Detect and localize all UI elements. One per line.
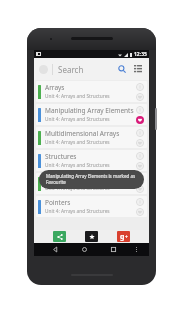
staticText: Multidimensional Arrays <box>45 129 120 138</box>
button[interactable]: Recent apps <box>109 245 118 254</box>
button[interactable]: View options <box>132 63 144 75</box>
staticText: Pointers <box>45 198 71 207</box>
staticText: + <box>125 234 128 241</box>
button[interactable]: Account <box>39 65 48 74</box>
button[interactable]: Download <box>136 83 144 91</box>
button[interactable]: Favourite <box>136 162 144 170</box>
button[interactable]: Google Plus <box>117 231 130 242</box>
button[interactable]: More options <box>132 245 141 254</box>
staticText: g <box>120 232 125 242</box>
button[interactable]: Favourites <box>85 231 98 242</box>
button[interactable]: Share <box>53 231 66 242</box>
button[interactable]: Download <box>136 198 144 206</box>
staticText: Search <box>58 64 116 75</box>
button[interactable]: Back <box>51 245 60 254</box>
staticText: Manipulating Array Elements <box>45 106 134 115</box>
button[interactable]: Download <box>136 106 144 114</box>
staticText: Structures <box>45 152 77 161</box>
button[interactable]: Download <box>136 152 144 160</box>
staticText: Manipulating Array Elements is marked as… <box>46 173 137 185</box>
staticText: Declaring a Structure <box>45 175 110 184</box>
button[interactable]: Favourite <box>136 139 144 147</box>
button[interactable]: Download <box>136 129 144 137</box>
button[interactable]: Pointers <box>36 196 147 217</box>
staticText: Unit 4: Arrays and Structures <box>45 116 110 123</box>
button[interactable]: Favourite <box>136 93 144 101</box>
staticText: 12:35 <box>134 51 147 58</box>
staticText: Unit 4: Arrays and Structures <box>45 185 110 192</box>
staticText: Unit 4: Arrays and Structures <box>45 139 110 146</box>
button[interactable]: Manipulating Array Elements <box>36 104 147 125</box>
button[interactable]: Account <box>34 58 149 80</box>
button[interactable]: Home <box>80 245 89 254</box>
button[interactable]: Search <box>116 63 128 75</box>
staticText: Unit 4: Arrays and Structures <box>45 93 110 100</box>
button[interactable]: Favourite <box>136 185 144 193</box>
button[interactable]: Multidimensional Arrays <box>36 127 147 148</box>
button[interactable]: Download <box>136 175 144 183</box>
button[interactable]: Declaring a Structure <box>36 173 147 194</box>
button[interactable]: Arrays <box>36 81 147 102</box>
button[interactable]: Favourite <box>136 116 144 124</box>
button[interactable]: Structures <box>36 150 147 171</box>
staticText: Arrays <box>45 83 65 92</box>
staticText: Unit 4: Arrays and Structures <box>45 208 110 215</box>
button[interactable]: Favourite <box>136 208 144 216</box>
staticText: Unit 4: Arrays and Structures <box>45 162 110 169</box>
